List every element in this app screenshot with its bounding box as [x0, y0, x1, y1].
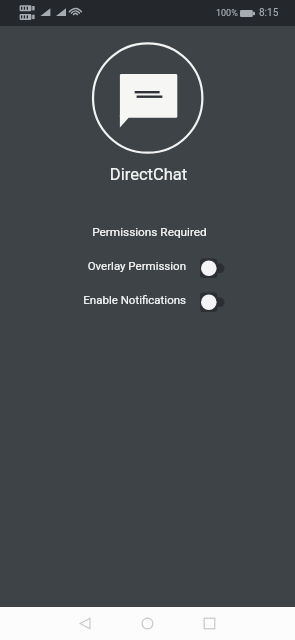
button[interactable]: Recent apps	[198, 607, 221, 640]
staticText: 100%	[216, 8, 238, 19]
button[interactable]: Overlay Permission	[0, 254, 295, 276]
button[interactable]: Home	[136, 607, 159, 640]
button[interactable]: Back	[74, 607, 97, 640]
staticText: DirectChat	[1, 165, 295, 184]
staticText: 8:15	[259, 7, 279, 19]
staticText: Permissions Required	[2, 225, 295, 239]
staticText: Enable Notifications	[83, 293, 186, 306]
staticText: Overlay Permission	[87, 259, 186, 272]
button[interactable]: Enable Notifications	[0, 288, 295, 310]
